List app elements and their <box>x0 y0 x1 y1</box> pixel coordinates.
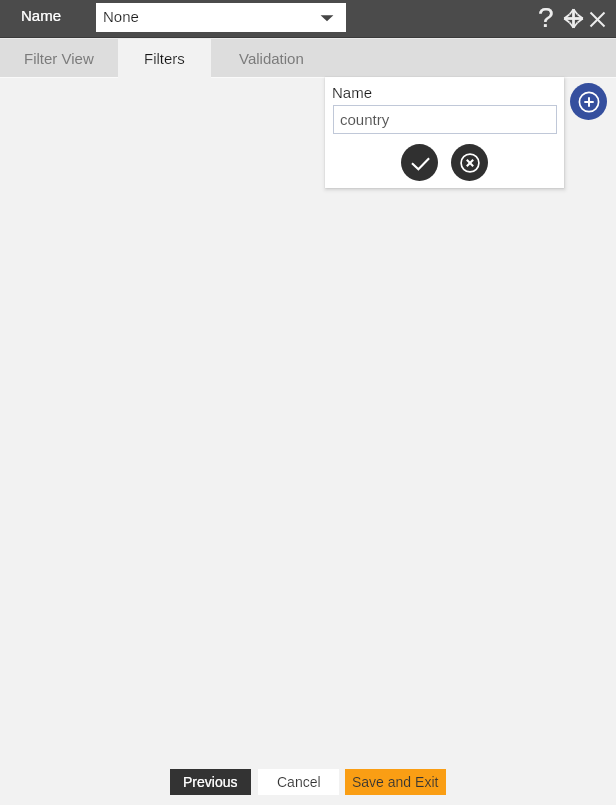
button[interactable]: Add <box>570 83 607 120</box>
button[interactable]: country <box>333 105 557 134</box>
button[interactable]: Cancel edit <box>451 144 488 181</box>
staticText: Save and Exit <box>352 774 439 790</box>
button[interactable]: Filters <box>118 39 211 77</box>
button[interactable]: Filter View <box>0 39 118 77</box>
staticText: None <box>103 8 139 25</box>
button[interactable]: Close <box>583 5 612 34</box>
staticText: Name <box>332 84 373 101</box>
button[interactable]: Confirm <box>401 144 438 181</box>
button[interactable]: None <box>96 3 346 32</box>
staticText: country <box>340 111 390 128</box>
button[interactable]: Previous <box>170 769 251 795</box>
staticText: ? <box>538 2 554 33</box>
button[interactable]: Save and Exit <box>345 769 446 795</box>
staticText: Previous <box>183 774 238 790</box>
button[interactable]: Move <box>559 4 588 33</box>
staticText: Filter View <box>24 50 94 67</box>
button[interactable]: Help <box>530 0 562 35</box>
staticText: Validation <box>239 50 304 67</box>
button[interactable]: Cancel <box>258 769 339 795</box>
staticText: Cancel <box>277 774 321 790</box>
button[interactable]: Validation <box>211 39 331 77</box>
staticText: Filters <box>144 50 185 67</box>
staticText: Name <box>21 7 62 24</box>
